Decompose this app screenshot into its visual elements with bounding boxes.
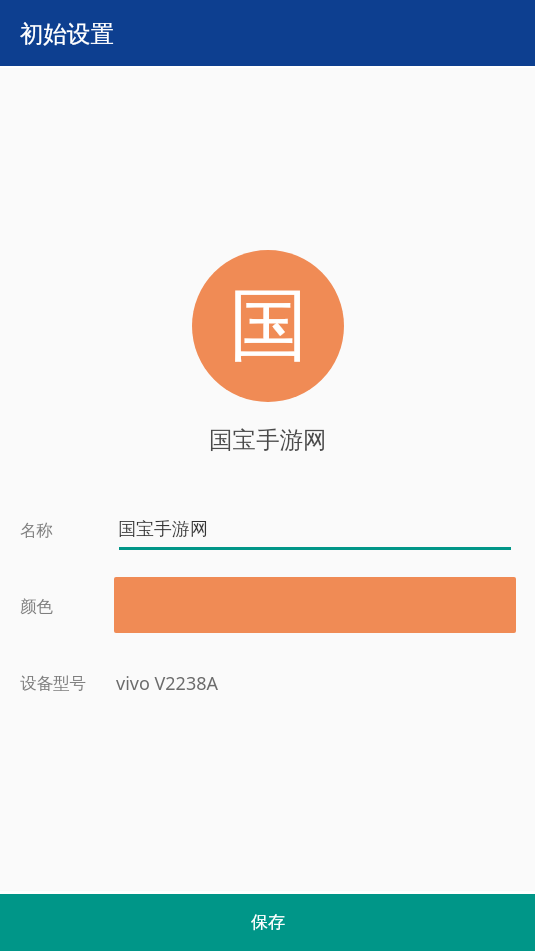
button[interactable]: 名称 [0, 505, 535, 563]
staticText: 国宝手游网 [209, 425, 327, 455]
staticText: 国宝手游网 [118, 518, 208, 541]
staticText: 保存 [251, 912, 285, 933]
staticText: 名称 [20, 520, 53, 541]
button[interactable]: 保存 [0, 894, 535, 951]
button[interactable]: Change app icon [192, 250, 344, 402]
button[interactable]: Pick colour [0, 577, 535, 633]
staticText: 颜色 [20, 596, 53, 617]
staticText: vivo V2238A [116, 671, 218, 696]
staticText: 初始设置 [20, 19, 114, 49]
staticText: 国 [229, 276, 308, 376]
staticText: 设备型号 [20, 673, 86, 694]
